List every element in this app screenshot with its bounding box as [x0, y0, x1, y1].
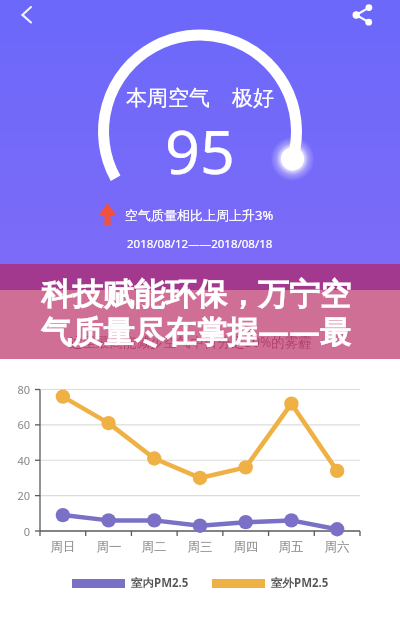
staticText: 95: [165, 109, 235, 192]
staticText: 周六: [317, 539, 357, 555]
staticText: 周一: [89, 539, 129, 555]
staticText: 80: [0, 382, 30, 397]
staticText: 室内PM2.5: [131, 575, 189, 591]
staticText: 40: [0, 453, 30, 468]
staticText: 本周空气 极好: [126, 83, 274, 112]
staticText: 60: [0, 417, 30, 432]
staticText: 空气质量相比上周上升3%: [125, 206, 274, 224]
button[interactable]: Back: [0, 0, 46, 46]
staticText: 周日: [43, 539, 83, 555]
staticText: 周四: [226, 539, 266, 555]
staticText: 周五: [271, 539, 311, 555]
staticText: 2018/08/12——2018/08/18: [127, 236, 273, 252]
button[interactable]: Share: [346, 0, 392, 46]
staticText: 周三: [180, 539, 220, 555]
staticText: 这里最高能减少空气中百分之30%的雾霾: [69, 333, 312, 351]
staticText: 室外PM2.5: [271, 575, 329, 591]
button[interactable]: 室内PM2.5: [72, 575, 189, 591]
staticText: 科技赋能环保，万宁空 气质量尽在掌握——最: [41, 275, 351, 353]
staticText: 0: [0, 524, 30, 539]
staticText: 20: [0, 488, 30, 503]
staticText: 周二: [134, 539, 174, 555]
button[interactable]: 室外PM2.5: [212, 575, 329, 591]
